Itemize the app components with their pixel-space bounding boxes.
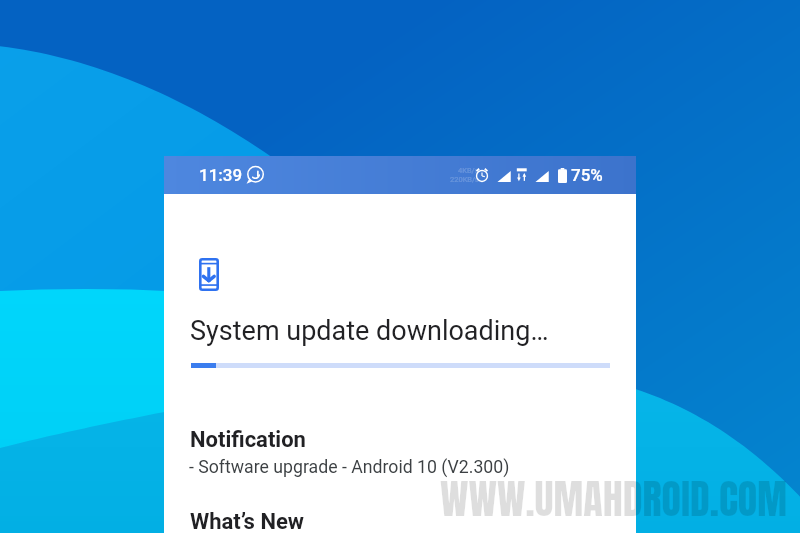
staticText: WWW.UMAHDROID.COM <box>440 469 788 529</box>
staticText: 4KB/s <box>458 166 479 175</box>
other: WhatsApp notification <box>246 166 264 184</box>
other: System update download <box>199 258 219 291</box>
staticText: 220KB/s <box>450 175 479 184</box>
staticText: What’s New <box>190 509 305 533</box>
staticText: Notification <box>190 427 306 453</box>
staticText: 11:39 <box>199 165 243 185</box>
staticText: - Software upgrade - Android 10 (V2.300) <box>189 457 510 478</box>
staticText: System update downloading… <box>190 315 549 347</box>
staticText: 75% <box>571 165 603 185</box>
